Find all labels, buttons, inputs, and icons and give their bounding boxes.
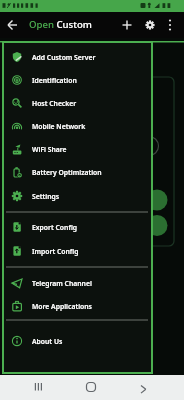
staticText: Mobile Network [32,122,86,131]
button[interactable] [5,18,20,32]
button[interactable]: Telegram Channel [4,274,151,292]
staticText: Add Custom Server [32,53,96,62]
button[interactable]: Import Config [4,242,151,260]
button[interactable]: Mobile Network [4,117,151,135]
button[interactable] [143,18,157,32]
button[interactable]: More Applications [4,297,151,315]
staticText: Settings [32,192,60,201]
staticText: Import Config [32,247,79,256]
button[interactable] [133,377,153,397]
button[interactable] [81,377,101,397]
button[interactable]: Host Checker [4,94,151,112]
staticText: Open Custom [29,18,92,31]
button[interactable]: Add Custom Server [4,48,151,66]
staticText: Export Config [32,223,78,232]
button[interactable] [164,18,176,30]
button[interactable]: About Us [4,332,151,350]
button[interactable]: Battery Optimization [4,163,151,181]
staticText: Battery Optimization [32,168,102,177]
staticText: Host Checker [32,99,77,108]
staticText: More Applications [32,302,92,311]
button[interactable] [120,18,134,32]
button[interactable]: Identification [4,71,151,89]
staticText: About Us [32,337,63,346]
button[interactable]: Settings [4,187,151,205]
button[interactable]: WiFi Share [4,140,151,158]
staticText: Telegram Channel [32,279,92,288]
staticText: Identification [32,76,77,85]
button[interactable] [28,377,48,397]
staticText: WiFi Share [32,145,67,154]
button[interactable]: Export Config [4,218,151,236]
